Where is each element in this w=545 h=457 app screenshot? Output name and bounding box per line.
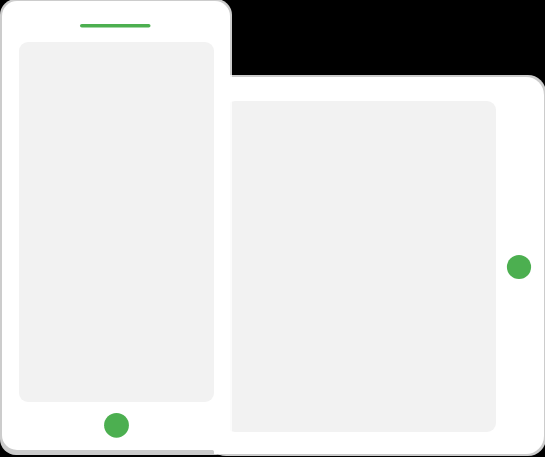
button[interactable] <box>104 413 129 438</box>
button[interactable] <box>507 255 531 279</box>
